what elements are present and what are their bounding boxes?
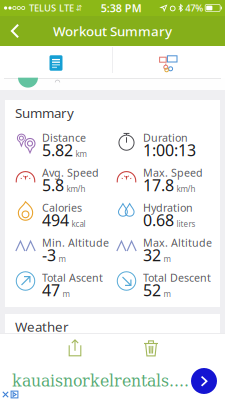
staticText: Workout Summary [53, 22, 172, 40]
staticText: Max. Speed [143, 165, 203, 180]
staticText: Summary [15, 104, 74, 122]
staticText: m [62, 288, 69, 299]
staticText: Duration [143, 130, 188, 145]
staticText: Hydration [143, 200, 193, 215]
staticText: 1:00:13 [143, 139, 196, 161]
staticText: m [163, 253, 170, 264]
staticText: 5.8 [42, 174, 64, 196]
staticText: Distance [42, 130, 86, 145]
staticText: liters [176, 218, 195, 229]
staticText: 47 [42, 279, 60, 301]
staticText: 52 [143, 279, 161, 301]
staticText: m [163, 288, 170, 299]
button[interactable]: Charts [112, 46, 225, 78]
staticText: 494 [42, 209, 69, 231]
staticText: Total Ascent [42, 270, 103, 285]
staticText: 0.68 [143, 209, 174, 231]
staticText: Calories [42, 200, 82, 215]
staticText: 5.82 [42, 139, 73, 161]
staticText: km/h [66, 183, 85, 194]
staticText: 17.8 [143, 174, 174, 196]
staticText: Max. Altitude [143, 235, 212, 250]
staticText: -3 [42, 244, 56, 266]
staticText: ⇵ [75, 3, 82, 13]
staticText: 5:38 PM [101, 1, 142, 15]
staticText: Total Descent [143, 270, 211, 285]
staticText: 47% [185, 2, 203, 14]
button[interactable]: Back [0, 16, 30, 46]
staticText: Avg. Speed [42, 165, 99, 180]
staticText: LTE [59, 2, 74, 14]
staticText: Weather [15, 318, 69, 335]
button[interactable]: Delete [133, 334, 169, 362]
button[interactable]: Share [57, 334, 93, 362]
staticText: m [58, 253, 65, 264]
button[interactable]: Summary [0, 46, 112, 78]
staticText: TELUS [29, 2, 56, 14]
staticText: km/h [176, 183, 195, 194]
staticText: kauaisnorkelrentals.... [12, 372, 189, 390]
staticText: km [75, 148, 86, 159]
staticText: 32 [143, 244, 161, 266]
button[interactable]: kauaisnorkelrentals.... [0, 362, 225, 400]
staticText: kcal [71, 218, 85, 229]
staticText: Min. Altitude [42, 235, 109, 250]
